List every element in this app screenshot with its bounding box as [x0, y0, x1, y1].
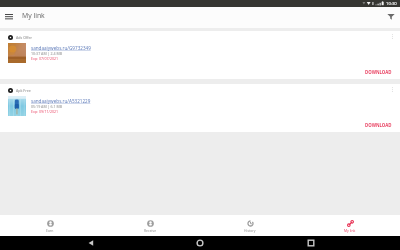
- button[interactable]: More options: [388, 32, 396, 40]
- staticText: DOWNLOAD: [365, 122, 392, 128]
- staticText: sandaaiywebs.ru/A5321229: [31, 98, 91, 104]
- button[interactable]: Open navigation menu: [1, 8, 17, 24]
- staticText: Exp: 09/11/2021: [31, 109, 59, 114]
- button[interactable]: More options: [388, 85, 396, 93]
- button[interactable]: Filter: [383, 8, 399, 24]
- staticText: Apk Free: [16, 88, 31, 93]
- staticText: My link: [22, 11, 45, 20]
- staticText: Ads Offer: [16, 35, 32, 40]
- button[interactable]: My link: [300, 215, 400, 236]
- staticText: 10:30: [386, 1, 397, 7]
- button[interactable]: History: [200, 215, 300, 236]
- button[interactable]: Ads Offer: [0, 31, 400, 79]
- staticText: Receive: [144, 228, 157, 233]
- staticText: History: [244, 228, 256, 233]
- staticText: 05:19 AM | 6.1 MB: [31, 104, 63, 109]
- button[interactable]: DOWNLOAD: [365, 122, 392, 128]
- button[interactable]: DOWNLOAD: [365, 69, 392, 75]
- button[interactable]: Earn: [0, 215, 100, 236]
- staticText: My link: [344, 228, 356, 233]
- staticText: 10:37 AM | 2.4 MB: [31, 51, 63, 56]
- button[interactable]: Receive: [100, 215, 200, 236]
- staticText: DOWNLOAD: [365, 69, 392, 75]
- staticText: Earn: [46, 228, 54, 233]
- button[interactable]: Apk Free: [0, 84, 400, 132]
- staticText: Exp: 07/07/2021: [31, 56, 59, 61]
- staticText: sandaaiywebs.ru/G9732349: [31, 45, 91, 51]
